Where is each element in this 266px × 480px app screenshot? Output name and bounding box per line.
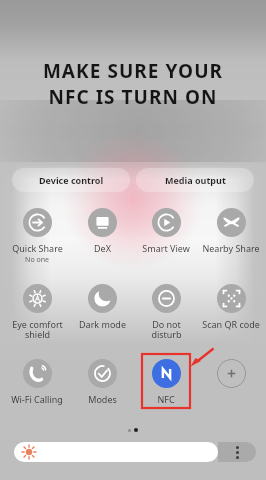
staticText: Nearby Share <box>202 242 260 254</box>
button[interactable]: Nearby Share <box>199 206 263 254</box>
button[interactable]: Add tile <box>199 357 263 393</box>
button[interactable]: Dark mode <box>70 282 134 330</box>
button[interactable]: Wi-Fi Calling <box>5 357 69 405</box>
button[interactable]: Device control <box>12 168 130 192</box>
button[interactable]: Brightness <box>14 442 218 462</box>
staticText: Eye comfort shield <box>12 318 63 341</box>
button[interactable]: Media output <box>136 168 254 192</box>
staticText: Device control <box>39 174 104 186</box>
button[interactable]: DeX <box>70 206 134 254</box>
button[interactable]: Do not disturb <box>134 282 198 341</box>
staticText: Smart View <box>142 242 190 254</box>
staticText: NFC <box>157 393 175 405</box>
staticText: Wi-Fi Calling <box>11 393 63 405</box>
staticText: MAKE SURE YOUR NFC IS TURN ON <box>0 58 266 110</box>
staticText: Scan QR code <box>202 318 260 330</box>
button[interactable]: Eye comfort shield <box>5 282 69 341</box>
staticText: Media output <box>165 174 226 186</box>
button[interactable]: NFC <box>134 357 198 405</box>
staticText: DeX <box>94 242 111 254</box>
button[interactable]: Smart View <box>134 206 198 254</box>
staticText: Do not disturb <box>151 318 182 341</box>
button[interactable]: Modes <box>70 357 134 405</box>
button[interactable]: More options <box>218 442 256 462</box>
staticText: Dark mode <box>79 318 126 330</box>
staticText: Quick Share <box>12 242 63 254</box>
button[interactable]: Quick Share <box>5 206 69 265</box>
button[interactable]: Scan QR code <box>199 282 263 330</box>
staticText: Modes <box>88 393 117 405</box>
staticText: No one <box>25 255 49 265</box>
